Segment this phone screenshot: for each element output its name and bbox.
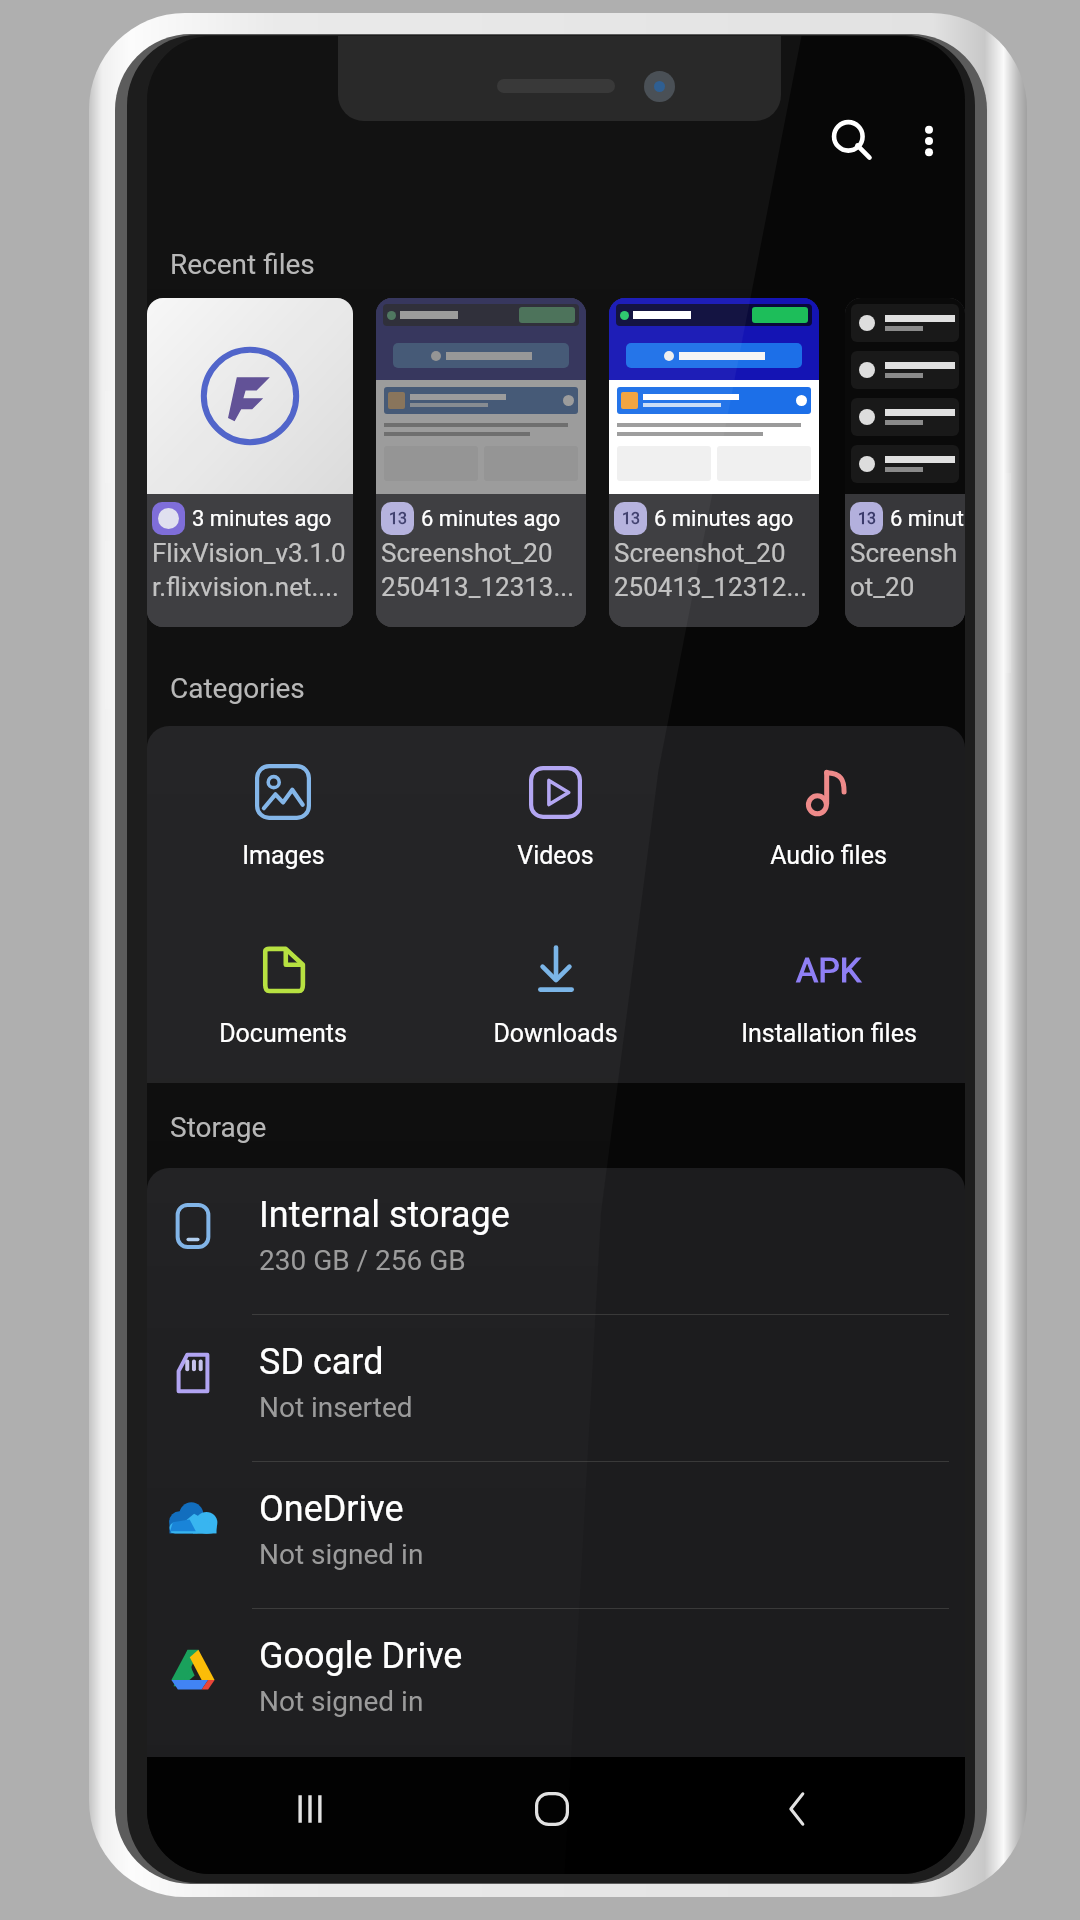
button[interactable]: OneDrive — [147, 1462, 965, 1609]
staticText: Internal storage — [259, 1194, 510, 1236]
staticText: Recent files — [170, 248, 315, 281]
staticText: 3 minutes ago — [192, 506, 332, 532]
button[interactable]: Audio files — [692, 726, 965, 904]
staticText: 6 minutes ago — [654, 506, 794, 532]
button[interactable]: Search — [813, 102, 891, 180]
staticText: Screenshot_20 250413_12313... — [381, 538, 575, 602]
staticText: 13 — [389, 509, 407, 528]
staticText: OneDrive — [259, 1488, 404, 1530]
staticText: Installation files — [741, 1019, 917, 1048]
staticText: Images — [242, 841, 325, 870]
button[interactable]: Videos — [419, 726, 692, 904]
staticText: Not inserted — [259, 1391, 413, 1424]
button[interactable]: Internal storage — [147, 1168, 965, 1315]
staticText: Screenshot_20 250413_12312... — [614, 538, 808, 602]
button[interactable]: 13 — [609, 298, 819, 627]
staticText: 6 minutes ago — [421, 506, 561, 532]
button[interactable]: More options — [893, 105, 965, 177]
staticText: Documents — [219, 1019, 347, 1048]
button[interactable]: 3 minutes ago — [147, 298, 353, 627]
staticText: 6 minutes ago — [890, 506, 965, 532]
button[interactable]: Google Drive — [147, 1609, 965, 1756]
staticText: Categories — [170, 672, 305, 705]
staticText: 230 GB / 256 GB — [259, 1244, 466, 1277]
staticText: Screenshot_20 250413_1... — [850, 538, 965, 602]
button[interactable]: Downloads — [419, 904, 692, 1083]
staticText: 13 — [858, 509, 876, 528]
button[interactable]: APK — [692, 904, 965, 1083]
staticText: Google Drive — [259, 1635, 463, 1677]
staticText: Not signed in — [259, 1685, 424, 1718]
staticText: Not signed in — [259, 1538, 424, 1571]
button[interactable]: Recents — [270, 1769, 350, 1849]
staticText: Downloads — [493, 1019, 618, 1048]
button[interactable]: Back — [757, 1769, 837, 1849]
staticText: Videos — [517, 841, 594, 870]
button[interactable]: 13 — [845, 298, 965, 627]
staticText: APK — [796, 950, 861, 990]
staticText: Storage — [170, 1111, 267, 1144]
button[interactable]: SD card — [147, 1315, 965, 1462]
staticText: 13 — [622, 509, 640, 528]
button[interactable]: Images — [147, 726, 419, 904]
button[interactable]: Documents — [147, 904, 419, 1083]
button[interactable]: 13 — [376, 298, 586, 627]
staticText: SD card — [259, 1341, 384, 1383]
staticText: FlixVision_v3.1.0 r.flixvision.net.... — [152, 538, 346, 602]
staticText: Audio files — [770, 841, 887, 870]
button[interactable]: Home — [512, 1769, 592, 1849]
